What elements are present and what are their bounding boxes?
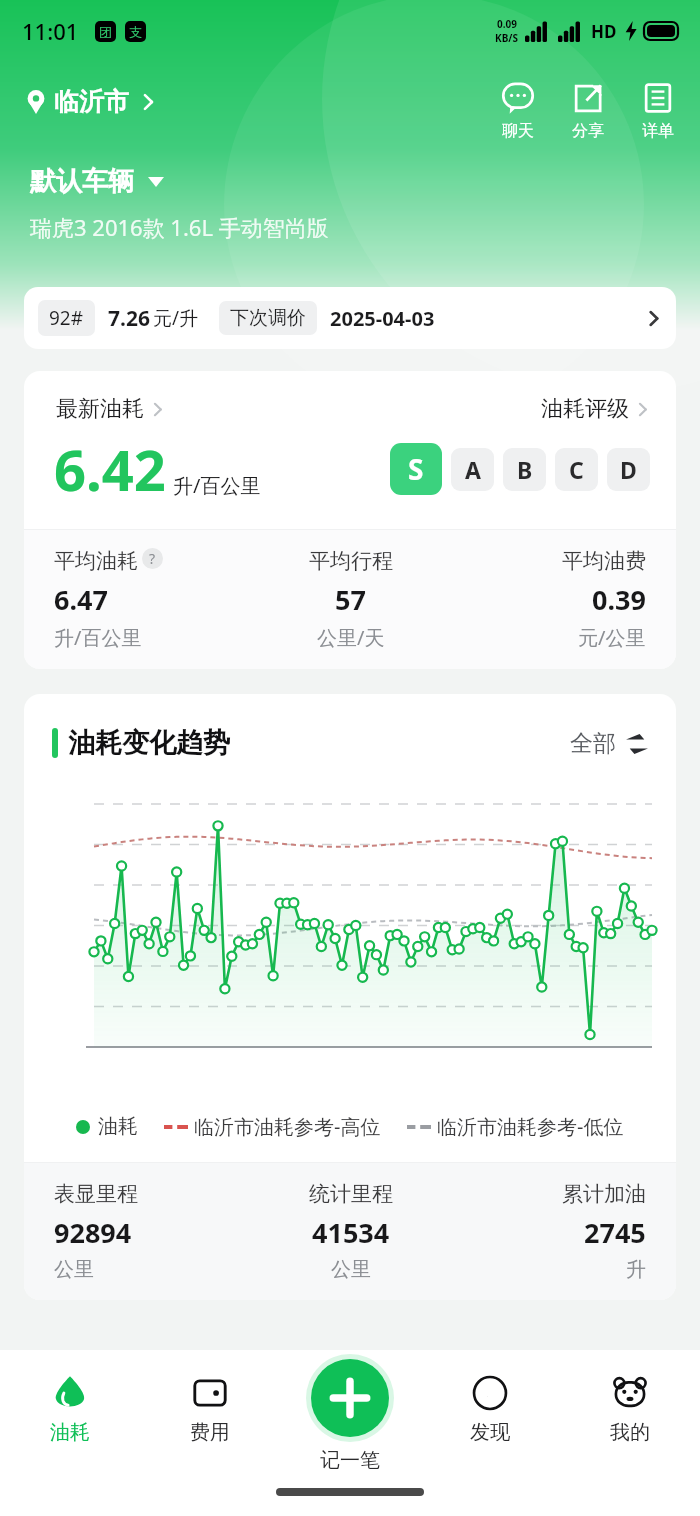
staticText: HD [591, 20, 617, 43]
staticText: B [517, 454, 533, 485]
button[interactable]: Details [640, 82, 676, 141]
button[interactable]: Help [142, 548, 163, 569]
staticText: 平均油费 [562, 548, 646, 574]
staticText: 聊天 [502, 121, 534, 141]
button[interactable]: 油耗 [0, 1350, 140, 1468]
staticText: KB/S [495, 31, 518, 45]
button[interactable]: Add record [306, 1354, 394, 1473]
staticText: 油耗评级 [541, 395, 629, 423]
staticText: 元/升 [153, 305, 199, 331]
button[interactable]: Chat [500, 82, 536, 141]
staticText: 0.09 [497, 17, 517, 31]
staticText: 临沂市油耗参考-高位 [194, 1113, 381, 1140]
button[interactable]: 油耗评级 [541, 395, 650, 423]
button[interactable]: 92# [24, 287, 676, 349]
staticText: D [620, 454, 637, 485]
staticText: 支 [129, 24, 142, 40]
staticText: 7.26 [108, 304, 150, 333]
button[interactable]: 最新油耗 [56, 395, 165, 423]
staticText: 费用 [190, 1420, 230, 1445]
staticText: 油耗 [98, 1114, 138, 1139]
staticText: 油耗变化趋势 [68, 726, 230, 760]
button[interactable]: Share [570, 82, 606, 141]
staticText: 油耗 [50, 1420, 90, 1445]
staticText: 临沂市油耗参考-低位 [437, 1113, 624, 1140]
staticText: 默认车辆 [30, 165, 134, 198]
staticText: 公里 [54, 1257, 94, 1282]
button[interactable]: A [451, 448, 494, 491]
staticText: 升 [626, 1257, 646, 1282]
staticText: 57 [335, 581, 366, 618]
staticText: 全部 [570, 729, 616, 758]
staticText: A [465, 454, 481, 485]
staticText: 统计里程 [309, 1181, 393, 1207]
staticText: 瑞虎3 2016款 1.6L 手动智尚版 [30, 212, 329, 242]
staticText: 最新油耗 [56, 395, 144, 423]
staticText: 公里/天 [317, 624, 385, 651]
staticText: 团 [99, 24, 112, 40]
button[interactable]: D [607, 448, 650, 491]
button[interactable]: C [555, 448, 598, 491]
staticText: 平均油耗 [54, 548, 138, 574]
staticText: 分享 [572, 121, 604, 141]
staticText: C [569, 454, 584, 485]
staticText: ? [149, 549, 156, 568]
staticText: 6.47 [54, 581, 108, 618]
staticText: 详单 [642, 121, 674, 141]
staticText: 6.42 [54, 431, 166, 507]
staticText: 表显里程 [54, 1181, 138, 1207]
staticText: 发现 [470, 1420, 510, 1445]
staticText: 平均行程 [309, 548, 393, 574]
staticText: 临沂市 [54, 86, 129, 117]
staticText: 92894 [54, 1214, 132, 1251]
staticText: 41534 [312, 1214, 390, 1251]
staticText: 升/百公里 [54, 624, 142, 651]
staticText: 公里 [331, 1257, 371, 1282]
staticText: 元/公里 [578, 624, 646, 651]
staticText: S [408, 450, 424, 488]
staticText: 0.39 [592, 581, 646, 618]
button[interactable]: S [390, 443, 442, 495]
button[interactable]: 我的 [560, 1350, 700, 1468]
staticText: 2745 [584, 1214, 646, 1251]
button[interactable]: 临沂市 [26, 82, 157, 121]
button[interactable]: 全部 [570, 729, 650, 758]
button[interactable]: 发现 [420, 1350, 560, 1468]
staticText: 2025-04-03 [330, 305, 435, 332]
staticText: 记一笔 [320, 1448, 380, 1473]
staticText: 升/百公里 [173, 472, 261, 499]
button[interactable]: 费用 [140, 1350, 280, 1468]
staticText: 下次调价 [230, 306, 306, 330]
staticText: 我的 [610, 1420, 650, 1445]
staticText: 11:01 [22, 16, 79, 46]
staticText: 92# [49, 305, 84, 331]
button[interactable]: 默认车辆 [30, 165, 164, 198]
staticText: 累计加油 [562, 1181, 646, 1207]
button[interactable]: B [503, 448, 546, 491]
